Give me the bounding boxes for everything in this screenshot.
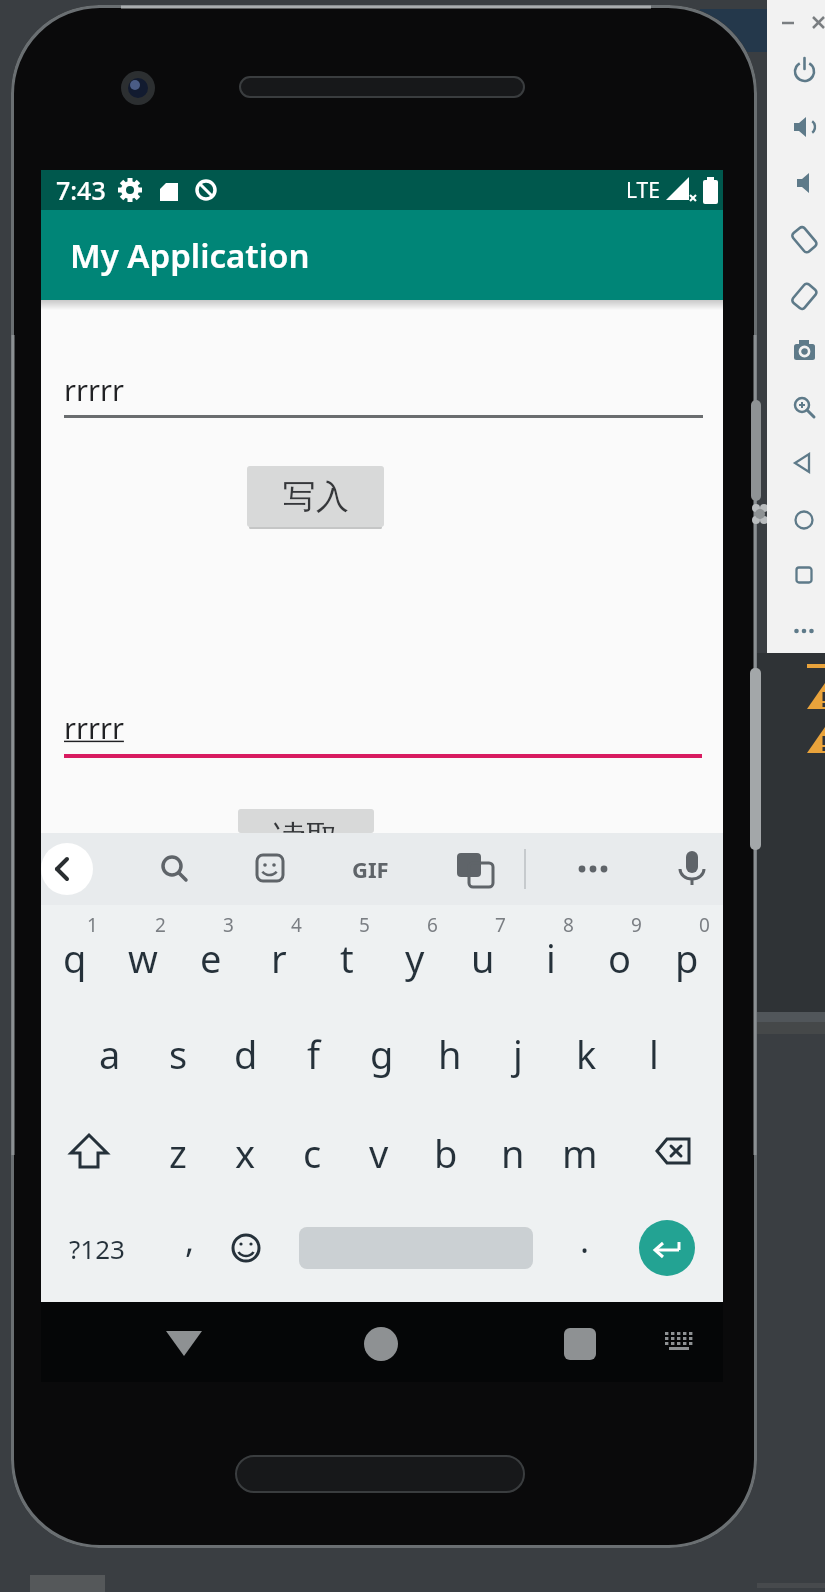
button[interactable] xyxy=(59,1123,119,1183)
staticText: p xyxy=(675,932,699,984)
button[interactable]: g xyxy=(352,1024,412,1084)
staticText: 8 xyxy=(563,912,574,938)
staticText: , xyxy=(185,1217,195,1263)
button[interactable]: rrrrr xyxy=(64,700,703,754)
button[interactable]: j xyxy=(488,1024,548,1084)
staticText: r xyxy=(271,932,287,984)
button[interactable] xyxy=(359,1322,403,1366)
button[interactable]: b xyxy=(416,1123,476,1183)
staticText: . xyxy=(580,1217,590,1263)
button[interactable] xyxy=(340,843,400,895)
staticText: 2 xyxy=(155,912,166,938)
button[interactable] xyxy=(782,553,825,597)
button[interactable] xyxy=(216,1218,276,1278)
staticText: b xyxy=(434,1127,458,1179)
button[interactable]: o xyxy=(589,928,649,988)
staticText: j xyxy=(513,1028,523,1080)
button[interactable] xyxy=(639,1220,695,1276)
staticText: 读取 xyxy=(273,817,339,833)
button[interactable]: i xyxy=(521,928,581,988)
button[interactable] xyxy=(782,498,825,542)
button[interactable] xyxy=(239,843,299,895)
button[interactable]: r xyxy=(249,928,309,988)
button[interactable] xyxy=(782,274,825,318)
staticText: l xyxy=(649,1028,659,1080)
staticText: f xyxy=(307,1028,321,1080)
staticText: m xyxy=(562,1127,598,1179)
button[interactable]: w xyxy=(113,928,173,988)
staticText: d xyxy=(234,1028,258,1080)
button[interactable]: rrrrr xyxy=(64,360,703,418)
button[interactable]: 写入 xyxy=(247,466,384,527)
button[interactable] xyxy=(657,1326,701,1362)
staticText: 4 xyxy=(291,912,302,938)
staticText: 7:43 xyxy=(56,173,106,207)
button[interactable] xyxy=(782,218,825,262)
staticText: LTE xyxy=(626,176,660,205)
button[interactable]: e xyxy=(181,928,241,988)
button[interactable]: k xyxy=(556,1024,616,1084)
button[interactable] xyxy=(162,1322,206,1366)
button[interactable] xyxy=(443,843,503,895)
button[interactable] xyxy=(141,843,201,895)
button[interactable] xyxy=(637,1123,697,1183)
button[interactable] xyxy=(782,161,825,205)
staticText: My Application xyxy=(70,233,310,278)
button[interactable]: s xyxy=(148,1024,208,1084)
staticText: 9 xyxy=(631,912,642,938)
staticText: ?123 xyxy=(69,1231,125,1266)
button[interactable]: h xyxy=(420,1024,480,1084)
button[interactable]: 读取 xyxy=(238,809,374,833)
button[interactable] xyxy=(782,441,825,485)
staticText: s xyxy=(169,1028,188,1080)
staticText: rrrrr xyxy=(64,708,124,747)
button[interactable] xyxy=(41,843,93,895)
staticText: 3 xyxy=(223,912,234,938)
button[interactable] xyxy=(782,49,825,93)
button[interactable]: a xyxy=(80,1024,140,1084)
button[interactable] xyxy=(563,843,623,895)
button[interactable] xyxy=(662,843,722,895)
button[interactable]: x xyxy=(215,1123,275,1183)
staticText: 5 xyxy=(359,912,370,938)
button[interactable]: t xyxy=(317,928,377,988)
staticText: x xyxy=(235,1127,256,1179)
button[interactable]: d xyxy=(216,1024,276,1084)
staticText: 6 xyxy=(427,912,438,938)
button[interactable] xyxy=(558,1322,602,1366)
button[interactable] xyxy=(782,105,825,149)
button[interactable] xyxy=(782,330,825,374)
button[interactable] xyxy=(52,1223,142,1273)
button[interactable]: n xyxy=(483,1123,543,1183)
staticText: g xyxy=(370,1028,394,1080)
button[interactable]: m xyxy=(550,1123,610,1183)
button[interactable]: q xyxy=(45,928,105,988)
button[interactable]: z xyxy=(148,1123,208,1183)
staticText: a xyxy=(99,1028,121,1080)
button[interactable]: l xyxy=(624,1024,684,1084)
staticText: 1 xyxy=(87,912,98,938)
button[interactable]: u xyxy=(453,928,513,988)
button[interactable] xyxy=(782,385,825,429)
button[interactable]: v xyxy=(349,1123,409,1183)
button[interactable]: y xyxy=(385,928,445,988)
staticText: e xyxy=(200,932,222,984)
staticText: rrrrr xyxy=(64,370,124,409)
staticText: GIF xyxy=(352,854,389,884)
staticText: 写入 xyxy=(283,476,349,518)
button[interactable] xyxy=(782,609,825,653)
staticText: q xyxy=(63,932,87,984)
staticText: n xyxy=(501,1127,525,1179)
staticText: i xyxy=(546,932,556,984)
staticText: 7 xyxy=(495,912,506,938)
button[interactable]: f xyxy=(284,1024,344,1084)
staticText: y xyxy=(405,932,425,984)
staticText: 0 xyxy=(699,912,710,938)
staticText: w xyxy=(128,932,158,984)
staticText: h xyxy=(438,1028,462,1080)
button[interactable]: c xyxy=(282,1123,342,1183)
staticText: u xyxy=(471,932,495,984)
button[interactable]: p xyxy=(657,928,717,988)
staticText: c xyxy=(303,1127,322,1179)
